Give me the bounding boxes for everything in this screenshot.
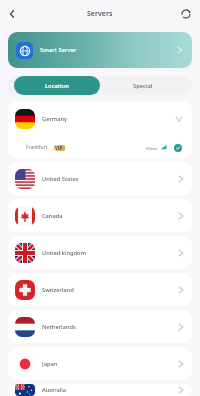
button[interactable]: Switzerland <box>8 273 192 306</box>
button[interactable]: Frankfurt <box>26 137 182 158</box>
staticText: Japan <box>42 360 58 368</box>
button[interactable]: Smart Server <box>8 32 192 68</box>
button[interactable]: Refresh <box>178 6 194 22</box>
staticText: United kingdom <box>42 249 86 257</box>
staticText: Servers <box>87 9 113 19</box>
button[interactable]: Germany <box>15 101 183 137</box>
staticText: United States <box>42 175 79 183</box>
staticText: Smart Server <box>40 46 77 54</box>
staticText: 55ms <box>146 145 157 151</box>
staticText: Location <box>45 82 69 90</box>
staticText: Canada <box>42 212 63 220</box>
button[interactable]: Netherlands <box>8 310 192 343</box>
button[interactable]: Australia <box>8 384 192 396</box>
button[interactable]: United States <box>8 162 192 195</box>
button[interactable]: Back <box>4 6 20 22</box>
staticText: Switzerland <box>42 286 74 294</box>
staticText: VIP <box>55 145 63 151</box>
button[interactable]: Canada <box>8 199 192 232</box>
button[interactable]: United kingdom <box>8 236 192 269</box>
button[interactable]: Location <box>14 76 100 95</box>
staticText: Australia <box>42 386 67 394</box>
button[interactable]: Japan <box>8 347 192 380</box>
staticText: Germany <box>42 115 68 123</box>
button[interactable]: Special <box>100 76 186 95</box>
staticText: Netherlands <box>42 323 76 331</box>
staticText: Special <box>133 82 153 90</box>
staticText: Frankfurt <box>26 144 48 151</box>
